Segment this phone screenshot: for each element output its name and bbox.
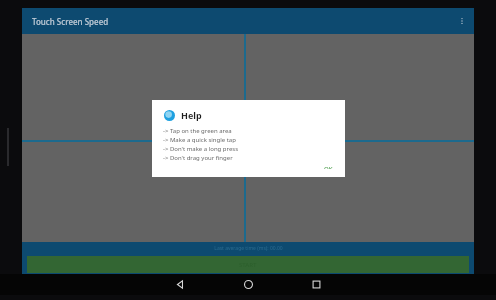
- button[interactable]: [22, 142, 244, 242]
- staticText: -> Tap on the green area: [163, 127, 232, 135]
- staticText: Touch Screen Speed: [32, 16, 109, 27]
- button[interactable]: Recent apps: [293, 274, 339, 295]
- button[interactable]: [246, 34, 474, 140]
- button[interactable]: Back: [157, 274, 203, 295]
- staticText: -> Don't drag your finger: [163, 154, 233, 162]
- staticText: Last average time (ms): 00.00: [214, 245, 283, 252]
- button[interactable]: [22, 34, 244, 140]
- button[interactable]: OK: [320, 163, 337, 171]
- button[interactable]: More options: [450, 9, 474, 33]
- staticText: Help: [181, 109, 202, 121]
- staticText: -> Don't make a long press: [163, 145, 239, 153]
- staticText: -> Make a quick single tap: [163, 136, 236, 144]
- button[interactable]: Home: [225, 274, 271, 295]
- button[interactable]: [246, 142, 474, 242]
- staticText: OK: [324, 165, 333, 169]
